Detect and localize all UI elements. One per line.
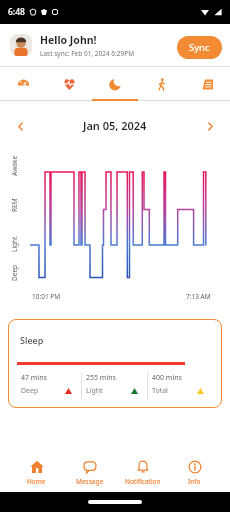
button[interactable]: Info — [169, 453, 220, 492]
button[interactable]: Sleep — [8, 319, 222, 408]
staticText: Last sync: Feb 01, 2024 6:29PM — [40, 49, 135, 58]
staticText: Deep — [10, 264, 19, 281]
button[interactable] — [12, 118, 28, 134]
button[interactable]: Home — [10, 453, 63, 492]
button[interactable] — [184, 67, 230, 101]
staticText: Message — [76, 477, 104, 486]
staticText: Awake — [10, 155, 19, 176]
staticText: 47 mins — [21, 373, 47, 383]
button[interactable] — [0, 67, 46, 101]
staticText: 400 mins — [152, 373, 182, 383]
button[interactable] — [138, 67, 184, 101]
button[interactable] — [92, 67, 138, 101]
staticText: Hello John! — [40, 33, 97, 47]
staticText: Light — [10, 236, 19, 252]
staticText: Notification — [125, 477, 161, 486]
staticText: Total — [152, 386, 168, 396]
staticText: Sync — [189, 41, 210, 54]
staticText: Home — [27, 477, 46, 486]
button[interactable] — [46, 67, 92, 101]
staticText: Info — [188, 477, 201, 486]
staticText: Light — [86, 386, 103, 396]
button[interactable]: Notification — [116, 453, 169, 492]
staticText: Deep — [21, 386, 39, 396]
staticText: Jan 05, 2024 — [83, 118, 147, 133]
staticText: Sleep — [20, 334, 44, 346]
button[interactable]: Message — [63, 453, 116, 492]
button[interactable]: Sync — [177, 36, 222, 59]
button[interactable] — [202, 118, 218, 134]
staticText: REM — [10, 198, 19, 212]
staticText: 10:01 PM — [32, 292, 61, 301]
staticText: 7:13 AM — [186, 292, 211, 301]
staticText: 6:48 — [8, 6, 25, 18]
staticText: 255 mins — [86, 373, 116, 383]
